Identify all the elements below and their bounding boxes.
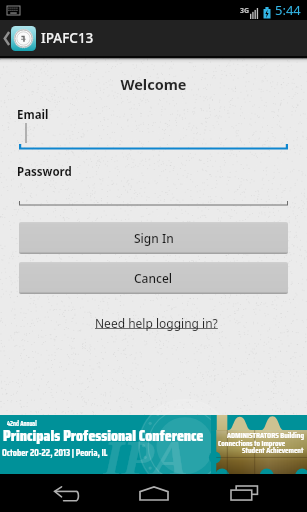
button[interactable]: Navigate up xyxy=(0,20,307,56)
button[interactable]: IPA xyxy=(0,415,307,474)
staticText: Welcome xyxy=(0,74,307,94)
staticText: ADMINISTRATORS Building xyxy=(227,429,305,442)
staticText: 42nd Annual xyxy=(7,419,37,429)
button[interactable]: Need help logging in? xyxy=(91,313,222,333)
staticText: Connections to Improve xyxy=(218,437,286,450)
staticText: Student Achievement xyxy=(242,444,304,457)
staticText: Sign In xyxy=(134,230,174,246)
staticText: 5:44 xyxy=(275,1,301,19)
staticText: Cancel xyxy=(134,270,173,286)
button[interactable]: Recent apps xyxy=(199,474,289,512)
staticText: IPA xyxy=(103,425,188,484)
button[interactable] xyxy=(19,178,288,206)
button[interactable] xyxy=(19,121,288,151)
staticText: Principals Professional Conference xyxy=(3,423,204,448)
button[interactable]: Cancel xyxy=(19,262,288,294)
button[interactable]: Home xyxy=(108,474,199,512)
staticText: October 20-22, 2013 | Peoria, IL xyxy=(2,445,108,460)
staticText: IPAFC13 xyxy=(41,29,94,47)
other: Navigate up xyxy=(4,31,10,46)
button[interactable]: Sign In xyxy=(19,222,288,254)
staticText: 3G xyxy=(240,6,250,16)
staticText: Password xyxy=(17,164,72,180)
staticText: Email xyxy=(17,107,49,123)
button[interactable]: Back xyxy=(28,474,108,512)
